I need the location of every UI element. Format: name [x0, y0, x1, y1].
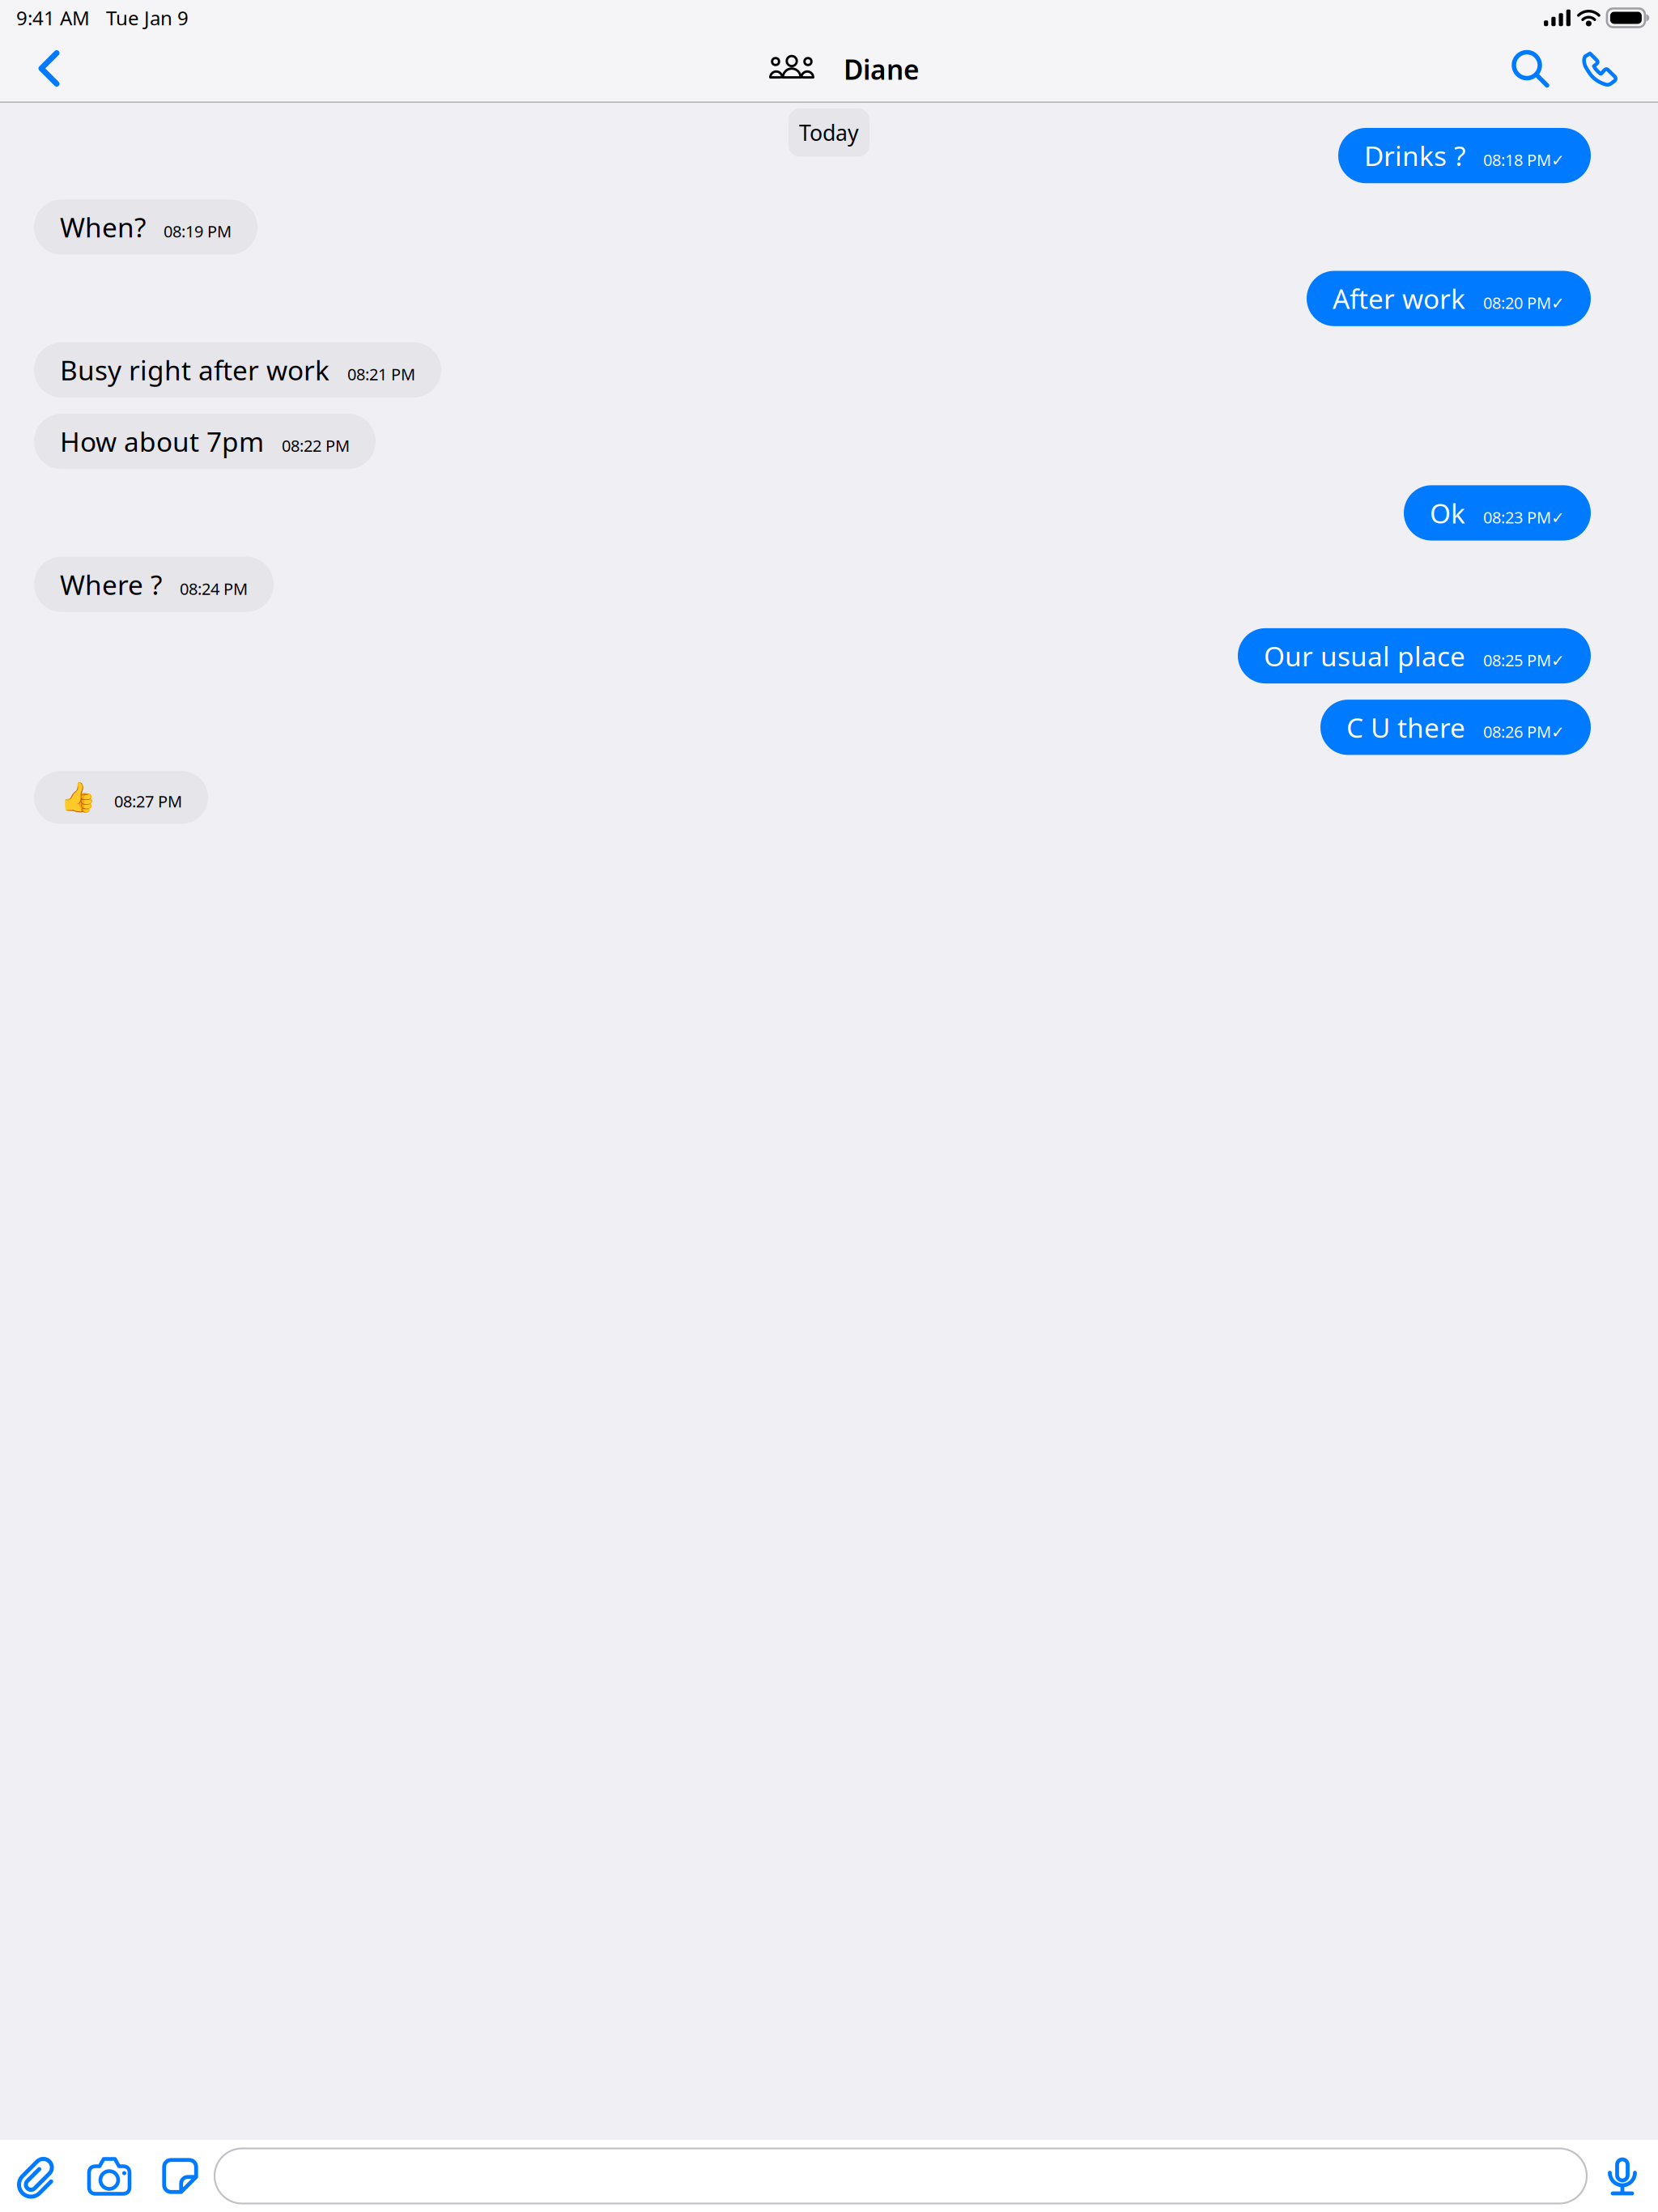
button[interactable]: Attach [0, 2141, 73, 2211]
staticText: 08:19 PM [164, 220, 232, 242]
button[interactable]: Camera [73, 2141, 146, 2211]
staticText: Busy right after work [60, 352, 329, 388]
staticText: 08:23 PM✓ [1483, 506, 1565, 528]
staticText: 9:41 AM [16, 5, 90, 31]
staticText: How about 7pm [60, 424, 264, 459]
staticText: 08:24 PM [180, 578, 248, 599]
staticText: Diane [844, 51, 920, 87]
staticText: 08:26 PM✓ [1483, 721, 1565, 742]
staticText: 08:27 PM [114, 790, 182, 812]
staticText: Drinks ? [1364, 138, 1465, 174]
staticText: Our usual place [1264, 638, 1465, 674]
staticText: 👍 [60, 781, 96, 814]
button[interactable]: Stickers [146, 2141, 215, 2211]
staticText: Tue Jan 9 [106, 5, 189, 31]
button[interactable] [215, 2148, 1587, 2203]
button[interactable]: Search [1477, 36, 1566, 103]
staticText: C U there [1346, 709, 1465, 745]
staticText: After work [1333, 281, 1465, 316]
staticText: When? [60, 209, 146, 245]
staticText: 08:18 PM✓ [1483, 149, 1565, 171]
button[interactable]: Dictate [1587, 2141, 1658, 2211]
button[interactable]: Call [1566, 36, 1658, 103]
staticText: Where ? [60, 566, 162, 602]
staticText: Ok [1430, 495, 1465, 531]
staticText: 08:21 PM [347, 363, 415, 385]
staticText: Today [799, 118, 859, 147]
staticText: 08:25 PM✓ [1483, 649, 1565, 671]
staticText: 08:20 PM✓ [1483, 292, 1565, 314]
staticText: 08:22 PM [282, 435, 350, 456]
button[interactable]: Back [0, 36, 81, 103]
